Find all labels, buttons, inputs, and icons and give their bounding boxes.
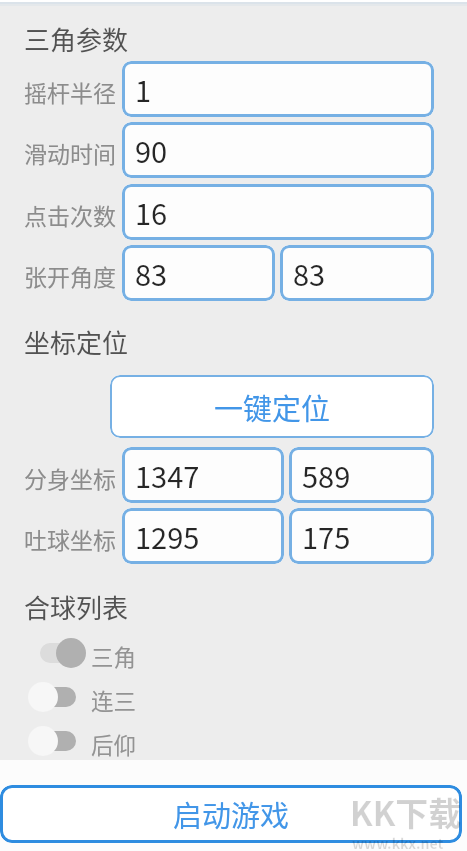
staticText: 589: [302, 454, 351, 496]
staticText: 后仰: [91, 728, 137, 761]
staticText: 分身坐标: [24, 461, 116, 494]
staticText: 90: [135, 129, 168, 171]
button[interactable]: 连三: [24, 676, 154, 718]
button[interactable]: 90: [122, 122, 434, 178]
staticText: www.kkx.net: [352, 833, 444, 851]
staticText: 1295: [135, 515, 200, 557]
button[interactable]: 后仰: [24, 720, 154, 762]
staticText: 吐球坐标: [24, 522, 116, 555]
staticText: 三角: [91, 640, 137, 673]
button[interactable]: 16: [122, 184, 434, 240]
staticText: KK下载: [350, 788, 462, 836]
button[interactable]: 83: [122, 245, 275, 301]
button[interactable]: 1: [122, 61, 434, 117]
button[interactable]: 175: [289, 508, 434, 564]
button[interactable]: 三角: [24, 632, 154, 674]
staticText: 一键定位: [214, 386, 331, 428]
button[interactable]: 一键定位: [110, 375, 434, 438]
staticText: 175: [302, 515, 351, 557]
button[interactable]: 启动游戏: [0, 785, 462, 843]
staticText: 16: [135, 191, 168, 233]
staticText: 83: [135, 252, 168, 294]
staticText: 坐标定位: [24, 323, 129, 361]
staticText: 合球列表: [24, 588, 129, 626]
button[interactable]: 589: [289, 447, 434, 503]
staticText: 张开角度: [24, 259, 116, 292]
button[interactable]: 1295: [122, 508, 284, 564]
staticText: 滑动时间: [24, 136, 116, 169]
staticText: 1: [135, 68, 152, 110]
staticText: 点击次数: [24, 198, 116, 231]
staticText: 启动游戏: [173, 793, 290, 835]
button[interactable]: 83: [280, 245, 434, 301]
staticText: 连三: [91, 684, 137, 717]
staticText: 摇杆半径: [24, 75, 116, 108]
button[interactable]: 1347: [122, 447, 284, 503]
staticText: 三角参数: [24, 20, 129, 58]
staticText: 1347: [135, 454, 200, 496]
staticText: 83: [293, 252, 326, 294]
